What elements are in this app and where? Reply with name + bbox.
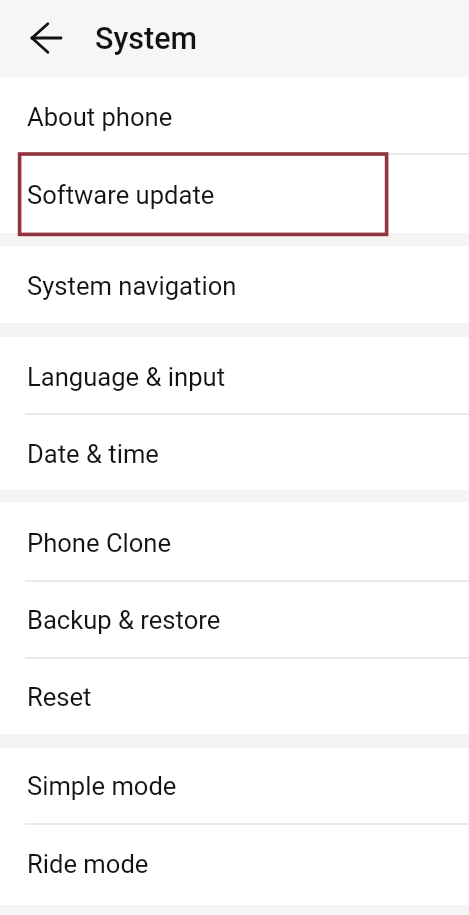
- button[interactable]: About phone: [0, 77, 469, 153]
- staticText: Language & input: [27, 362, 226, 392]
- staticText: Simple mode: [27, 771, 177, 801]
- staticText: Reset: [27, 682, 92, 712]
- button[interactable]: Navigate back: [12, 10, 70, 68]
- button[interactable]: Reset: [0, 659, 469, 734]
- button[interactable]: Simple mode: [0, 748, 469, 823]
- staticText: System navigation: [27, 271, 237, 301]
- button[interactable]: Date & time: [0, 415, 469, 490]
- button[interactable]: Software update: [0, 155, 469, 233]
- button[interactable]: Language & input: [0, 337, 469, 413]
- staticText: About phone: [27, 102, 173, 132]
- button[interactable]: System navigation: [0, 246, 469, 323]
- staticText: Backup & restore: [27, 605, 221, 635]
- button[interactable]: Backup & restore: [0, 582, 469, 657]
- staticText: Software update: [27, 180, 215, 210]
- staticText: Phone Clone: [27, 528, 172, 558]
- staticText: System: [95, 21, 198, 57]
- staticText: Date & time: [27, 439, 159, 469]
- staticText: Ride mode: [27, 849, 149, 879]
- button[interactable]: Phone Clone: [0, 502, 469, 580]
- button[interactable]: Ride mode: [0, 825, 469, 905]
